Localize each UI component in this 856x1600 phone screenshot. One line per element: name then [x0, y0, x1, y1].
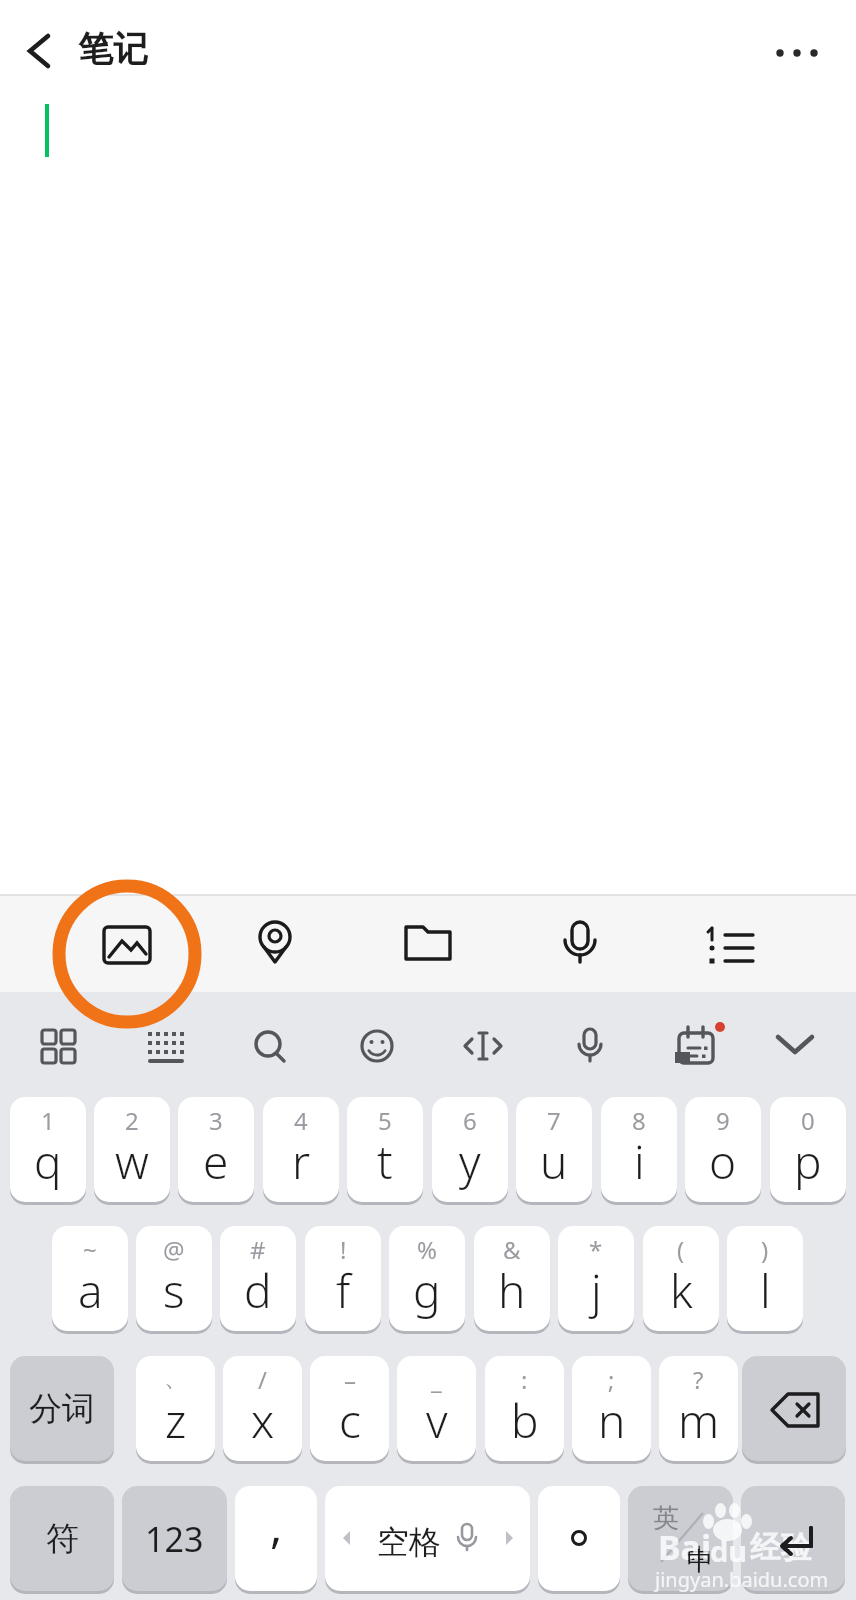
- button[interactable]: 0: [770, 1097, 846, 1202]
- staticText: l: [760, 1259, 771, 1322]
- staticText: #: [250, 1233, 266, 1266]
- button[interactable]: 8: [601, 1097, 677, 1202]
- button[interactable]: *: [558, 1226, 634, 1331]
- button[interactable]: 空格: [325, 1486, 530, 1591]
- button[interactable]: %: [389, 1226, 465, 1331]
- button[interactable]: [557, 1017, 623, 1083]
- staticText: %: [417, 1233, 437, 1266]
- button[interactable]: ): [727, 1226, 803, 1331]
- button[interactable]: [344, 1017, 410, 1083]
- staticText: c: [339, 1389, 361, 1452]
- staticText: jingyan.baidu.com: [655, 1566, 829, 1593]
- staticText: x: [251, 1389, 275, 1452]
- staticText: 2: [125, 1104, 139, 1137]
- staticText: h: [498, 1259, 526, 1322]
- staticText: j: [591, 1259, 602, 1322]
- staticText: @: [163, 1233, 185, 1266]
- button[interactable]: [742, 1356, 846, 1461]
- button[interactable]: [89, 905, 165, 981]
- button[interactable]: 、: [136, 1356, 215, 1461]
- staticText: m: [678, 1389, 720, 1452]
- staticText: n: [598, 1389, 626, 1452]
- button[interactable]: [760, 28, 830, 76]
- staticText: /: [258, 1363, 267, 1396]
- staticText: t: [377, 1130, 393, 1193]
- staticText: 0: [801, 1104, 815, 1137]
- button[interactable]: 3: [178, 1097, 254, 1202]
- button[interactable]: [133, 1017, 199, 1083]
- button[interactable]: 7: [516, 1097, 592, 1202]
- button[interactable]: 123: [122, 1486, 227, 1591]
- button[interactable]: [542, 905, 618, 981]
- button[interactable]: [538, 1486, 620, 1591]
- staticText: u: [540, 1130, 568, 1193]
- staticText: 6: [463, 1104, 477, 1137]
- staticText: y: [459, 1130, 481, 1193]
- staticText: 、: [164, 1363, 188, 1393]
- staticText: 7: [547, 1104, 561, 1137]
- staticText: 1: [41, 1104, 55, 1137]
- button[interactable]: –: [310, 1356, 389, 1461]
- staticText: *: [589, 1233, 603, 1266]
- button[interactable]: @: [136, 1226, 212, 1331]
- staticText: f: [336, 1259, 351, 1322]
- button[interactable]: [695, 905, 771, 981]
- button[interactable]: 英: [628, 1486, 733, 1591]
- staticText: !: [340, 1233, 347, 1266]
- button[interactable]: :: [485, 1356, 564, 1461]
- staticText: ,: [270, 1494, 283, 1557]
- button[interactable]: [390, 905, 466, 981]
- button[interactable]: ,: [235, 1486, 317, 1591]
- button[interactable]: [237, 905, 313, 981]
- button[interactable]: [237, 1017, 303, 1083]
- button[interactable]: [14, 24, 66, 78]
- button[interactable]: [662, 1017, 728, 1083]
- button[interactable]: ;: [572, 1356, 651, 1461]
- button[interactable]: 符: [10, 1486, 114, 1591]
- button[interactable]: &: [474, 1226, 550, 1331]
- staticText: 符: [46, 1518, 79, 1560]
- staticText: du: [710, 1531, 748, 1570]
- button[interactable]: 分词: [10, 1356, 114, 1461]
- button[interactable]: !: [305, 1226, 381, 1331]
- button[interactable]: /: [223, 1356, 302, 1461]
- button[interactable]: 2: [94, 1097, 170, 1202]
- staticText: o: [709, 1130, 737, 1193]
- button[interactable]: #: [220, 1226, 296, 1331]
- button[interactable]: ~: [52, 1226, 128, 1331]
- staticText: e: [203, 1130, 229, 1193]
- staticText: s: [163, 1259, 185, 1322]
- button[interactable]: 9: [685, 1097, 761, 1202]
- staticText: 4: [294, 1104, 308, 1137]
- staticText: ): [761, 1233, 769, 1266]
- button[interactable]: 6: [432, 1097, 508, 1202]
- staticText: –: [344, 1363, 356, 1396]
- staticText: g: [413, 1259, 441, 1322]
- button[interactable]: (: [643, 1226, 719, 1331]
- staticText: b: [511, 1389, 539, 1452]
- button[interactable]: _: [397, 1356, 476, 1461]
- button[interactable]: 4: [263, 1097, 339, 1202]
- button[interactable]: [741, 1486, 845, 1591]
- button[interactable]: [25, 1017, 91, 1083]
- button[interactable]: [450, 1017, 516, 1083]
- staticText: 123: [145, 1516, 204, 1562]
- staticText: a: [78, 1259, 103, 1322]
- staticText: 5: [378, 1104, 392, 1137]
- staticText: _: [431, 1363, 442, 1396]
- button[interactable]: [762, 1017, 828, 1083]
- button[interactable]: ?: [659, 1356, 738, 1461]
- staticText: z: [165, 1389, 187, 1452]
- staticText: ?: [693, 1363, 704, 1396]
- staticText: 3: [209, 1104, 223, 1137]
- staticText: 中: [687, 1545, 713, 1578]
- staticText: q: [34, 1130, 62, 1193]
- button[interactable]: 1: [10, 1097, 86, 1202]
- staticText: Bai: [658, 1524, 712, 1570]
- button[interactable]: 5: [347, 1097, 423, 1202]
- staticText: r: [292, 1130, 311, 1193]
- staticText: 笔记: [78, 27, 148, 71]
- staticText: :: [521, 1363, 528, 1396]
- staticText: w: [115, 1130, 149, 1193]
- staticText: i: [634, 1130, 645, 1193]
